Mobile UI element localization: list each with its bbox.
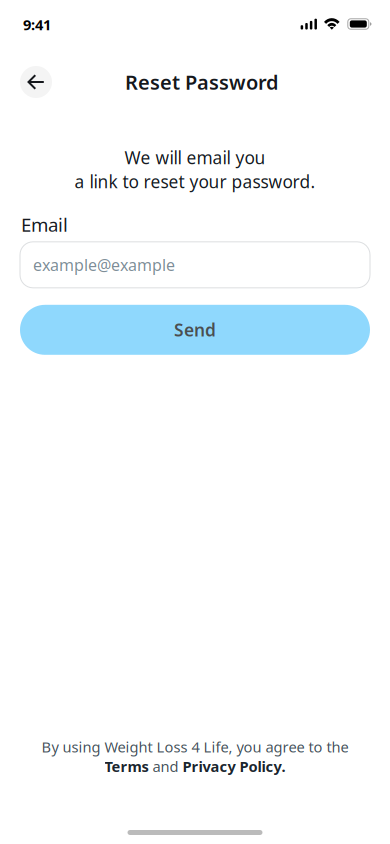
- staticText: Reset Password: [125, 69, 279, 95]
- staticText: Email: [21, 212, 68, 237]
- staticText: We will email you: [124, 146, 265, 169]
- staticText: and: [152, 756, 178, 776]
- button[interactable]: Send: [20, 305, 370, 355]
- button[interactable]: Privacy Policy.: [182, 756, 285, 776]
- staticText: example@example: [33, 254, 175, 275]
- button[interactable]: Email: [20, 242, 370, 288]
- staticText: a link to reset your password.: [74, 170, 315, 193]
- button[interactable]: Back: [20, 66, 52, 98]
- staticText: By using Weight Loss 4 Life, you agree t…: [41, 737, 348, 756]
- staticText: Terms: [104, 756, 148, 776]
- staticText: Send: [174, 318, 216, 341]
- staticText: 9:41: [23, 15, 51, 34]
- staticText: Privacy Policy.: [182, 756, 285, 776]
- button[interactable]: Terms: [104, 756, 148, 776]
